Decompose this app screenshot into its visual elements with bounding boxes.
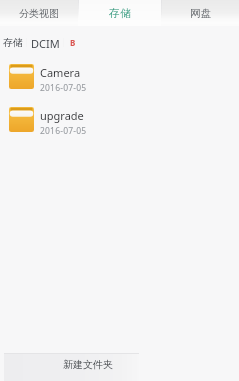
button[interactable]: 存储: [3, 36, 23, 48]
staticText: 存储: [3, 36, 23, 48]
button[interactable]: 网盘: [161, 0, 239, 26]
staticText: 2016-07-05: [40, 125, 87, 134]
button[interactable]: Camera: [0, 63, 239, 89]
button[interactable]: upgrade: [0, 106, 239, 132]
staticText: 新建文件夹: [63, 358, 113, 371]
staticText: 存储: [109, 6, 131, 20]
staticText: DCIM: [31, 36, 60, 48]
staticText: 2016-07-05: [40, 82, 87, 91]
staticText: upgrade: [40, 108, 84, 123]
button[interactable]: 存储: [78, 0, 161, 26]
staticText: B: [70, 37, 76, 48]
staticText: Camera: [40, 65, 81, 80]
button[interactable]: DCIM: [31, 36, 60, 48]
staticText: 网盘: [190, 7, 211, 20]
button[interactable]: 分类视图: [0, 0, 78, 26]
button[interactable]: 新建文件夹: [4, 353, 139, 381]
staticText: 分类视图: [19, 7, 59, 20]
